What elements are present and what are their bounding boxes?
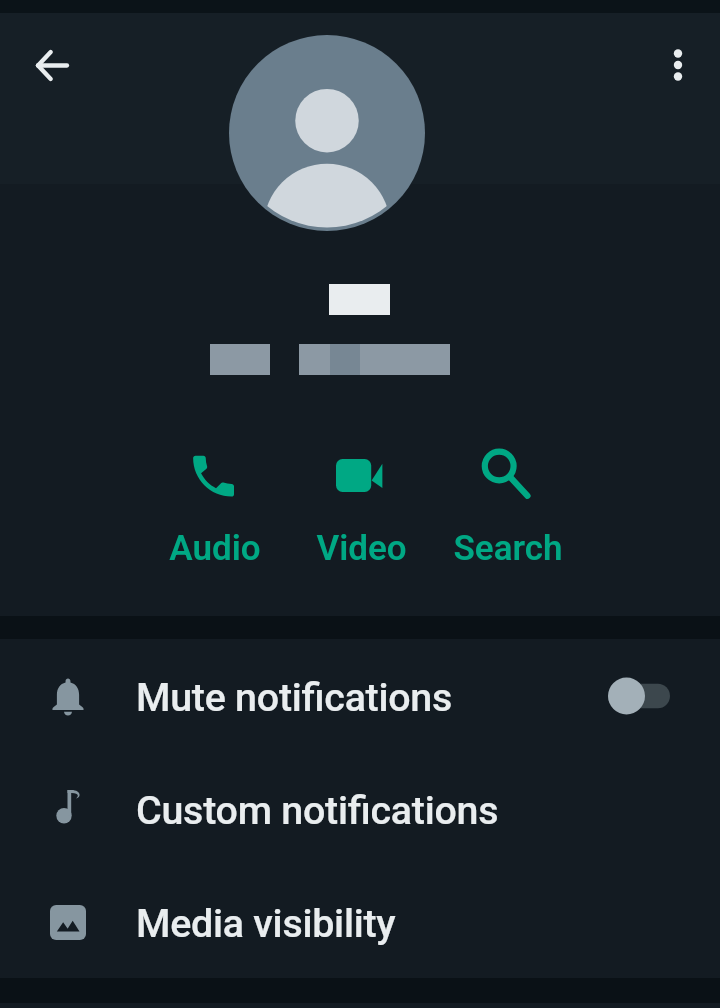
button[interactable]: Audio <box>142 451 288 569</box>
button[interactable]: Search <box>434 451 582 569</box>
button[interactable]: Mute notifications <box>0 639 720 752</box>
staticText: Media visibility <box>136 900 396 946</box>
button[interactable]: Media visibility <box>0 865 720 978</box>
button[interactable]: Custom notifications <box>0 752 720 865</box>
staticText: Video <box>316 528 407 569</box>
button[interactable]: Back <box>16 29 88 101</box>
button[interactable]: Profile photo <box>229 35 425 231</box>
staticText: Custom notifications <box>136 787 499 833</box>
staticText: Search <box>453 528 563 569</box>
staticText: Mute notifications <box>136 674 453 720</box>
button[interactable]: More options <box>642 29 714 101</box>
staticText: Audio <box>169 528 261 569</box>
button[interactable]: Mute notifications <box>593 666 685 726</box>
button[interactable]: Video <box>288 451 434 569</box>
